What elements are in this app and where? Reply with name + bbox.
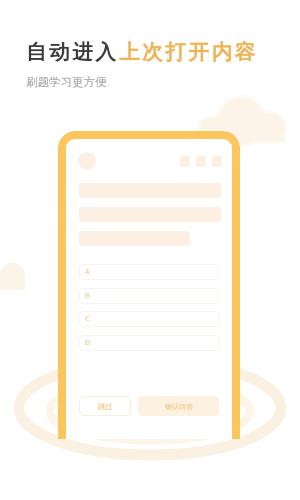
button[interactable]: D bbox=[79, 335, 220, 351]
staticText: 跳过 bbox=[98, 402, 112, 411]
button[interactable]: A bbox=[79, 264, 220, 280]
button[interactable]: B bbox=[79, 288, 220, 304]
staticText: B bbox=[85, 291, 90, 301]
button[interactable]: 确认回答 bbox=[138, 396, 219, 416]
staticText: 刷题学习更方便 bbox=[26, 75, 107, 89]
button[interactable]: C bbox=[79, 311, 220, 327]
staticText: 确认回答 bbox=[165, 402, 193, 411]
button[interactable]: 跳过 bbox=[79, 396, 131, 416]
staticText: 自动进入 bbox=[26, 39, 119, 65]
staticText: C bbox=[85, 314, 90, 324]
staticText: A bbox=[85, 267, 90, 277]
staticText: 上次打开内容 bbox=[119, 39, 258, 65]
staticText: D bbox=[85, 338, 91, 348]
